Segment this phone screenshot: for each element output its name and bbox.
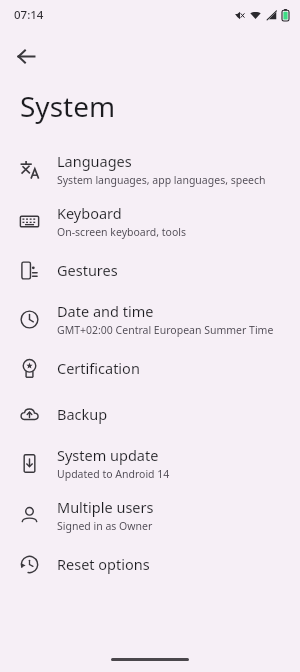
staticText: Certification bbox=[57, 358, 140, 378]
staticText: Gestures bbox=[57, 260, 118, 280]
staticText: Multiple users bbox=[57, 497, 154, 517]
staticText: Signed in as Owner bbox=[57, 519, 153, 533]
staticText: On-screen keyboard, tools bbox=[57, 225, 187, 239]
staticText: 07:14 bbox=[14, 7, 44, 23]
button[interactable]: Back bbox=[6, 36, 46, 76]
staticText: System languages, app languages, speech bbox=[57, 173, 266, 187]
button[interactable]: Gestures bbox=[0, 247, 300, 293]
staticText: Date and time bbox=[57, 301, 154, 321]
staticText: Keyboard bbox=[57, 203, 122, 223]
staticText: GMT+02:00 Central European Summer Time bbox=[57, 323, 274, 337]
staticText: System update bbox=[57, 445, 159, 465]
staticText: Updated to Android 14 bbox=[57, 467, 170, 481]
button[interactable]: Keyboard bbox=[0, 195, 300, 247]
button[interactable]: Backup bbox=[0, 391, 300, 437]
button[interactable]: Certification bbox=[0, 345, 300, 391]
button[interactable]: Languages bbox=[0, 143, 300, 195]
staticText: Languages bbox=[57, 151, 132, 171]
staticText: Reset options bbox=[57, 554, 150, 574]
button[interactable]: Multiple users bbox=[0, 489, 300, 541]
staticText: Backup bbox=[57, 404, 108, 424]
button[interactable]: System update bbox=[0, 437, 300, 489]
staticText: System bbox=[20, 87, 116, 125]
button[interactable]: Reset options bbox=[0, 541, 300, 587]
button[interactable]: Date and time bbox=[0, 293, 300, 345]
